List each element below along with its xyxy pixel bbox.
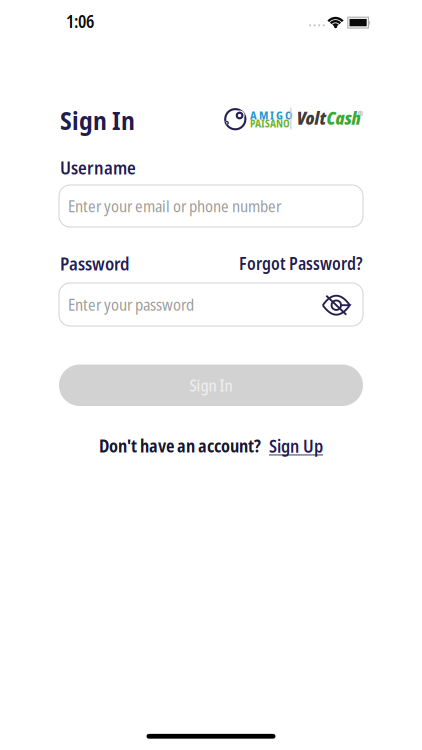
staticText: ® [358,110,363,118]
staticText: Don't have an account? [99,434,261,458]
staticText: 1:06 [66,10,94,33]
staticText: Cash [326,106,360,130]
staticText: Password [60,251,130,276]
staticText: Sign Up [269,434,323,458]
staticText: Sign In [189,374,232,396]
staticText: Enter your password [68,293,194,316]
staticText: PAISANO [250,117,290,130]
staticText: Username [60,155,136,180]
staticText: Sign In [60,103,135,137]
staticText: A M I G O [250,108,292,123]
staticText: Enter your email or phone number [68,195,281,217]
staticText: Forgot Password? [239,252,363,275]
staticText: Volt [296,106,326,130]
